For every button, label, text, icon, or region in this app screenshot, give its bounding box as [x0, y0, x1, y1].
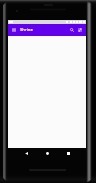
button[interactable]: Navigation menu: [8, 24, 19, 36]
button[interactable]: Search: [67, 24, 77, 36]
button[interactable]: Back: [21, 148, 31, 158]
button[interactable]: Recent apps: [63, 148, 73, 158]
staticText: Shrine: [20, 27, 33, 33]
button[interactable]: Home: [42, 148, 52, 158]
button[interactable]: Filter: [75, 24, 85, 36]
